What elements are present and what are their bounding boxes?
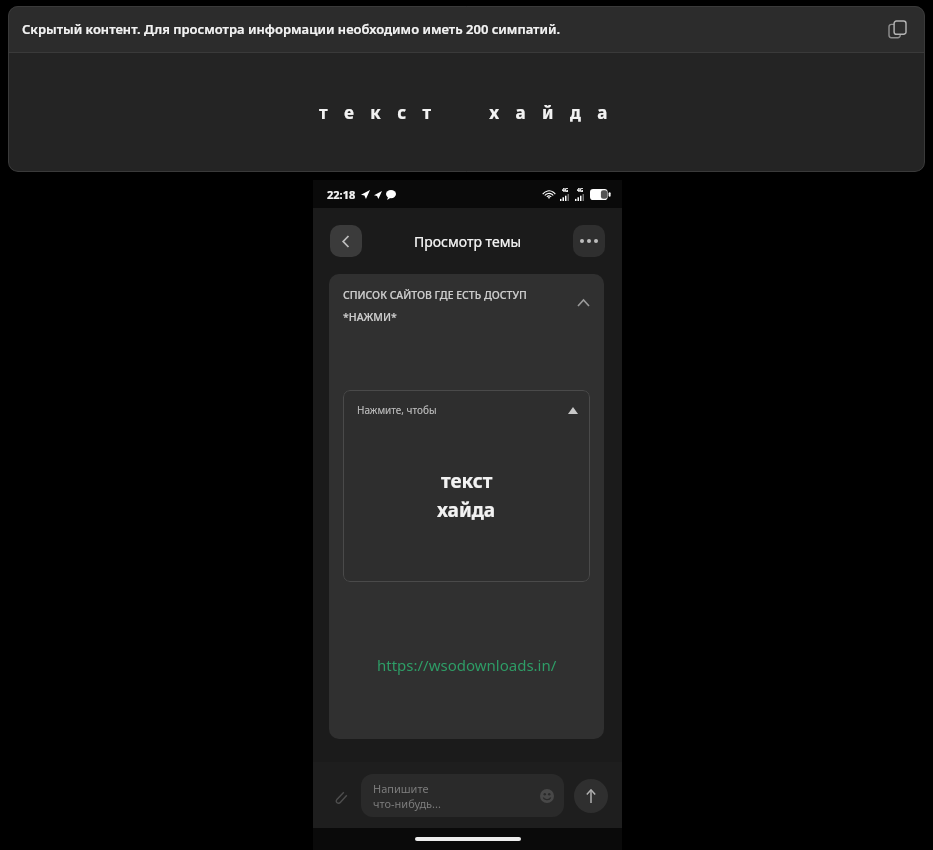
staticText: т е к с т х а й д а <box>319 101 614 124</box>
button[interactable]: Send <box>574 779 608 813</box>
button[interactable]: СПИСОК САЙТОВ ГДЕ ЕСТЬ ДОСТУП <box>329 274 604 739</box>
staticText: хайда <box>437 497 496 523</box>
button[interactable]: https://wsodownloads.in/ <box>377 655 557 675</box>
button[interactable]: Нажмите, чтобы <box>343 390 590 582</box>
staticText: СПИСОК САЙТОВ ГДЕ ЕСТЬ ДОСТУП <box>343 288 527 302</box>
staticText: 4G <box>562 187 569 194</box>
staticText: Скрытый контент. Для просмотра информаци… <box>22 20 561 38</box>
button[interactable]: Скрытый контент. Для просмотра информаци… <box>8 6 925 52</box>
button[interactable]: Collapse <box>574 294 592 312</box>
staticText: Просмотр темы <box>414 232 522 251</box>
staticText: *НАЖМИ* <box>343 310 397 324</box>
button[interactable]: Copy <box>883 15 911 43</box>
button[interactable]: Напишите <box>361 774 564 817</box>
button[interactable]: More options <box>573 225 605 257</box>
staticText: текст <box>441 468 493 494</box>
button[interactable]: Emoji <box>540 789 554 803</box>
button[interactable]: Attach <box>327 783 353 809</box>
staticText: что-нибудь... <box>373 796 441 811</box>
button[interactable]: Back <box>330 225 362 257</box>
staticText: 22:18 <box>327 187 356 202</box>
staticText: Напишите <box>373 781 429 796</box>
staticText: 4G <box>577 187 584 194</box>
staticText: Нажмите, чтобы <box>357 403 437 417</box>
